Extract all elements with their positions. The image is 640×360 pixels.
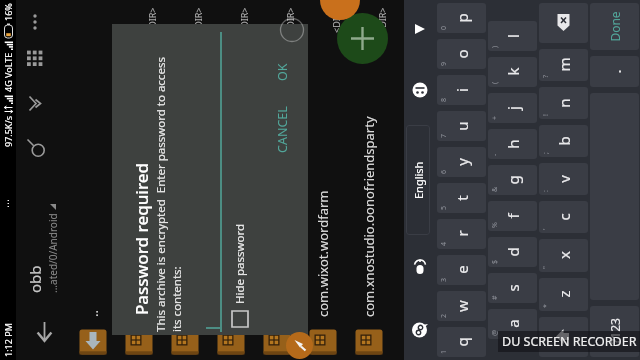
button[interactable]: ( (488, 57, 537, 87)
staticText: 16% (2, 3, 14, 21)
staticText: @ (490, 329, 500, 336)
button[interactable]: - (488, 129, 537, 159)
button[interactable]: Voice input (409, 256, 431, 278)
staticText: 1:12 PM (2, 323, 14, 357)
button[interactable]: com.igg.android.lordsmobile (208, 0, 254, 360)
staticText: f (503, 213, 523, 219)
staticText: s (503, 284, 523, 292)
button[interactable]: English (406, 125, 430, 235)
staticText: l (503, 34, 523, 38)
button[interactable]: More options (22, 6, 48, 38)
staticText: This archive is encrypted Enter password… (153, 57, 184, 332)
button[interactable]: + (488, 93, 537, 123)
button[interactable]: Add (337, 13, 388, 64)
staticText: OK (274, 63, 291, 81)
button[interactable]: 2 (437, 291, 486, 321)
staticText: com.ea.games.r3_row (130, 183, 148, 317)
staticText: Hide password (232, 223, 248, 304)
staticText: b (554, 136, 574, 146)
button[interactable]: 8 (437, 75, 486, 105)
staticText: . (605, 69, 625, 74)
button[interactable]: 5 (437, 183, 486, 213)
staticText: 9 (439, 61, 449, 66)
button[interactable]: & (488, 165, 537, 195)
staticText: 97.5K/s (2, 115, 14, 147)
staticText: 3 (439, 277, 449, 282)
button[interactable]: ) (488, 21, 537, 51)
button[interactable]: Shift (539, 317, 588, 357)
staticText: <DIR> (284, 7, 296, 33)
staticText: q (452, 337, 472, 347)
button[interactable]: ? (539, 49, 588, 81)
button[interactable]: 0 (437, 3, 486, 33)
staticText: ...ated/0/Android (46, 213, 60, 293)
staticText: u (452, 121, 472, 131)
staticText: % (490, 222, 500, 228)
staticText: DU SCREEN RECORDER (502, 333, 637, 350)
staticText: ' (541, 228, 551, 230)
staticText: English (411, 161, 426, 199)
staticText: k (503, 67, 523, 76)
button[interactable]: 3 (437, 255, 486, 285)
button[interactable]: 1 (437, 327, 486, 357)
button[interactable]: : (539, 163, 588, 195)
staticText: <DIR> (330, 7, 342, 33)
button[interactable]: " (539, 239, 588, 272)
button[interactable]: 4 (437, 219, 486, 249)
button[interactable]: # (488, 273, 537, 303)
button[interactable]: com.miniclip.eightballpool (254, 0, 300, 360)
staticText: com.wixot.wordfarm (314, 190, 332, 317)
staticText: y (452, 158, 472, 166)
button[interactable]: .. (70, 0, 116, 360)
button[interactable]: com.xnostudio.oonofriendsparty (346, 0, 392, 360)
button[interactable]: ; (539, 125, 588, 157)
button[interactable]: Backspace (539, 3, 588, 43)
staticText: w (452, 300, 472, 312)
button[interactable]: Sort (22, 88, 48, 120)
button[interactable]: @ (488, 309, 537, 339)
button[interactable]: Translate (409, 319, 431, 341)
button[interactable]: $ (488, 237, 537, 267)
button[interactable]: 7 (437, 111, 486, 141)
staticText: ?123 (607, 318, 623, 344)
button[interactable]: % (488, 201, 537, 231)
button[interactable]: Done (590, 3, 639, 50)
button[interactable]: 6 (437, 147, 486, 177)
staticText: Password required (130, 162, 153, 315)
button[interactable]: ! (539, 87, 588, 119)
button[interactable]: com.wixot.wordfarm (300, 0, 346, 360)
button[interactable]: CANCEL (268, 102, 297, 157)
button[interactable]: 9 (437, 39, 486, 69)
staticText: Done (607, 11, 623, 42)
button[interactable]: com.gameloft.android.ANMP.GloftA8HM (162, 0, 208, 360)
staticText: e (452, 265, 472, 274)
button[interactable]: com.ea.games.r3_row (116, 0, 162, 360)
staticText: j (503, 106, 523, 110)
staticText: - (490, 153, 500, 156)
button[interactable]: Grid view (22, 42, 48, 74)
button[interactable]: . (590, 56, 639, 87)
button[interactable]: Emoji (409, 79, 431, 101)
staticText: 2 (439, 313, 449, 318)
button[interactable]: ?123 (590, 306, 639, 357)
button[interactable]: Expand toolbar (409, 18, 431, 40)
staticText: r (452, 230, 472, 237)
staticText: d (503, 247, 523, 257)
staticText: x (554, 251, 574, 259)
staticText: * (541, 304, 551, 308)
staticText: m (554, 57, 574, 72)
button[interactable]: OK (268, 59, 297, 85)
button[interactable]: Screen recorder (286, 332, 313, 359)
button[interactable]: Navigate up (30, 318, 58, 346)
button[interactable]: * (539, 278, 588, 311)
button[interactable]: Hide password (231, 223, 249, 328)
button[interactable]: ' (539, 201, 588, 233)
staticText: " (541, 266, 551, 269)
staticText: h (503, 139, 523, 149)
button[interactable]: Search (22, 132, 48, 164)
staticText: n (554, 98, 574, 108)
staticText: com.xnostudio.oonofriendsparty (360, 116, 378, 317)
staticText: obb (25, 265, 45, 293)
